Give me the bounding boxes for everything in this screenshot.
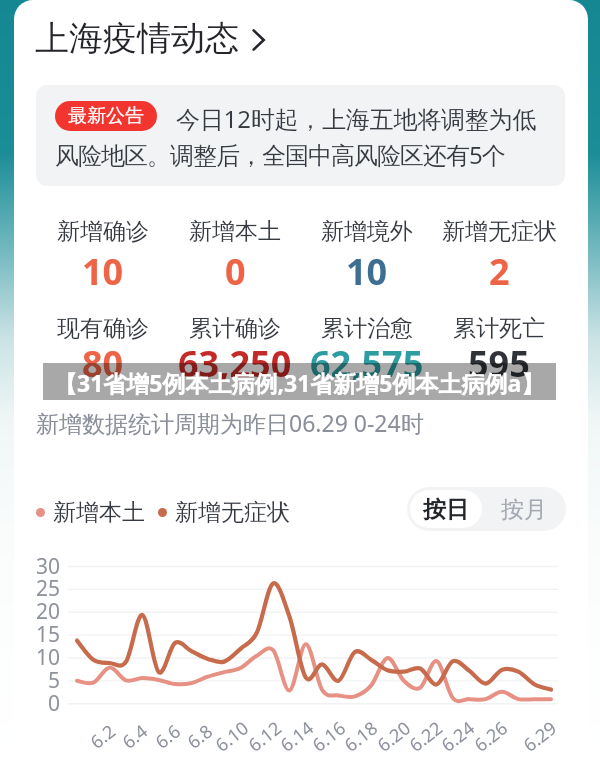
staticText: 6.20 bbox=[372, 716, 416, 757]
staticText: 6.18 bbox=[339, 716, 383, 757]
button[interactable]: 按月 bbox=[485, 490, 563, 528]
staticText: 6.8 bbox=[182, 719, 218, 754]
staticText: 15 bbox=[14, 620, 60, 649]
staticText: 新增境外 bbox=[321, 217, 413, 246]
button[interactable]: 上海疫情动态 bbox=[35, 17, 269, 60]
staticText: 累计死亡 bbox=[453, 314, 545, 343]
staticText: 10 bbox=[14, 643, 60, 672]
staticText: 6.29 bbox=[518, 716, 562, 757]
staticText: 63,250 bbox=[178, 339, 292, 388]
staticText: 6.24 bbox=[436, 716, 480, 757]
staticText: 今日12时起，上海五地将调整为低 bbox=[176, 102, 537, 135]
staticText: 风险地区。调整后，全国中高风险区还有5个 bbox=[55, 138, 505, 171]
staticText: 2 bbox=[489, 247, 510, 296]
staticText: 0 bbox=[225, 247, 246, 296]
staticText: 6.6 bbox=[150, 719, 186, 754]
staticText: 6.26 bbox=[469, 716, 513, 757]
staticText: 按日 bbox=[423, 495, 469, 524]
staticText: 新增无症状 bbox=[442, 217, 557, 246]
staticText: 新增确诊 bbox=[57, 217, 149, 246]
staticText: 按月 bbox=[501, 495, 547, 524]
staticText: 新增本土 bbox=[189, 217, 281, 246]
staticText: 10 bbox=[346, 247, 388, 296]
button[interactable]: 按日 bbox=[410, 490, 482, 528]
staticText: 0 bbox=[14, 689, 60, 718]
staticText: 6.22 bbox=[404, 716, 448, 757]
staticText: 累计确诊 bbox=[189, 314, 281, 343]
staticText: 6.4 bbox=[117, 719, 153, 754]
staticText: 10 bbox=[82, 247, 124, 296]
staticText: 6.16 bbox=[307, 716, 351, 757]
staticText: 累计治愈 bbox=[321, 314, 413, 343]
staticText: 595 bbox=[468, 339, 530, 388]
staticText: 20 bbox=[14, 597, 60, 626]
staticText: 6.10 bbox=[210, 716, 254, 757]
staticText: 62,575 bbox=[310, 339, 424, 388]
staticText: 25 bbox=[14, 574, 60, 603]
staticText: 6.12 bbox=[243, 716, 287, 757]
staticText: 现有确诊 bbox=[57, 314, 149, 343]
staticText: 新增无症状 bbox=[175, 498, 290, 527]
staticText: 【31省增5例本土病例,31省新增5例本土病例a】 bbox=[54, 367, 545, 398]
staticText: 最新公告 bbox=[68, 104, 144, 128]
staticText: 新增本土 bbox=[53, 498, 145, 527]
staticText: 6.14 bbox=[275, 716, 319, 757]
staticText: 80 bbox=[82, 339, 124, 388]
staticText: 上海疫情动态 bbox=[35, 17, 239, 60]
staticText: 新增数据统计周期为昨日06.29 0-24时 bbox=[36, 407, 424, 438]
button[interactable]: 最新公告 bbox=[36, 85, 565, 186]
staticText: 6.2 bbox=[85, 719, 121, 754]
staticText: 5 bbox=[14, 666, 60, 695]
staticText: 30 bbox=[14, 552, 60, 581]
